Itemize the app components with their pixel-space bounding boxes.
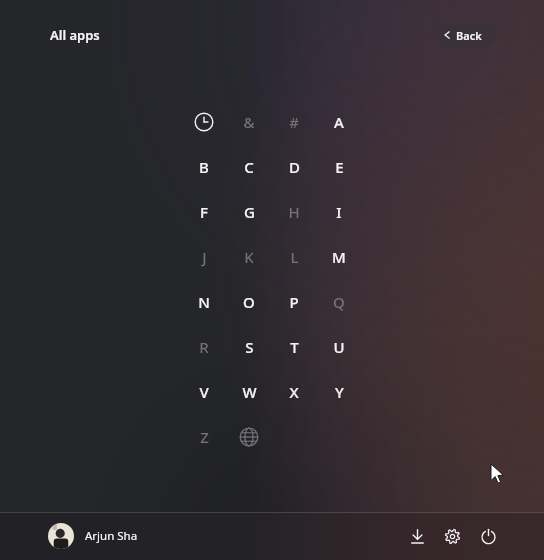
button[interactable]: N	[187, 285, 221, 319]
button[interactable]: Arjun Sha	[48, 512, 158, 560]
button[interactable]: Web apps	[232, 420, 266, 454]
staticText: &	[243, 112, 255, 132]
button[interactable]: Power	[476, 512, 500, 560]
staticText: F	[200, 202, 208, 222]
staticText: O	[243, 292, 255, 312]
staticText: Q	[333, 292, 345, 312]
button[interactable]: Recently added	[187, 105, 221, 139]
staticText: N	[198, 292, 210, 312]
button[interactable]: A	[322, 105, 356, 139]
button[interactable]: &	[232, 105, 266, 139]
button[interactable]: J	[187, 240, 221, 274]
staticText: C	[244, 157, 254, 177]
button[interactable]: #	[277, 105, 311, 139]
button[interactable]: F	[187, 195, 221, 229]
button[interactable]: Downloads	[405, 512, 429, 560]
button[interactable]: K	[232, 240, 266, 274]
staticText: K	[244, 247, 254, 267]
staticText: D	[289, 157, 300, 177]
button[interactable]: C	[232, 150, 266, 184]
button[interactable]: B	[187, 150, 221, 184]
staticText: X	[289, 382, 299, 402]
staticText: G	[244, 202, 255, 222]
staticText: All apps	[50, 26, 100, 44]
button[interactable]: X	[277, 375, 311, 409]
staticText: H	[288, 202, 300, 222]
staticText: U	[333, 337, 345, 357]
button[interactable]: Settings	[440, 512, 464, 560]
staticText: Back	[456, 28, 482, 43]
button[interactable]: T	[277, 330, 311, 364]
staticText: J	[202, 247, 207, 267]
staticText: Z	[200, 427, 209, 447]
button[interactable]: D	[277, 150, 311, 184]
staticText: S	[245, 337, 254, 357]
staticText: A	[334, 112, 344, 132]
button[interactable]: Back	[438, 23, 495, 47]
button[interactable]: V	[187, 375, 221, 409]
staticText: Y	[335, 382, 344, 402]
button[interactable]: Q	[322, 285, 356, 319]
button[interactable]: O	[232, 285, 266, 319]
staticText: B	[199, 157, 209, 177]
button[interactable]: W	[232, 375, 266, 409]
button[interactable]: Y	[322, 375, 356, 409]
button[interactable]: U	[322, 330, 356, 364]
button[interactable]: R	[187, 330, 221, 364]
button[interactable]: L	[277, 240, 311, 274]
button[interactable]: M	[322, 240, 356, 274]
staticText: E	[335, 157, 344, 177]
staticText: M	[332, 247, 346, 267]
staticText: W	[242, 382, 257, 402]
button[interactable]: E	[322, 150, 356, 184]
staticText: #	[289, 112, 299, 132]
button[interactable]: P	[277, 285, 311, 319]
staticText: L	[290, 247, 299, 267]
button[interactable]: G	[232, 195, 266, 229]
staticText: R	[199, 337, 209, 357]
button[interactable]: I	[322, 195, 356, 229]
staticText: T	[290, 337, 299, 357]
button[interactable]: H	[277, 195, 311, 229]
button[interactable]: S	[232, 330, 266, 364]
staticText: I	[336, 202, 342, 222]
staticText: P	[289, 292, 299, 312]
staticText: Arjun Sha	[85, 528, 138, 544]
button[interactable]: Z	[187, 420, 221, 454]
staticText: V	[199, 382, 209, 402]
